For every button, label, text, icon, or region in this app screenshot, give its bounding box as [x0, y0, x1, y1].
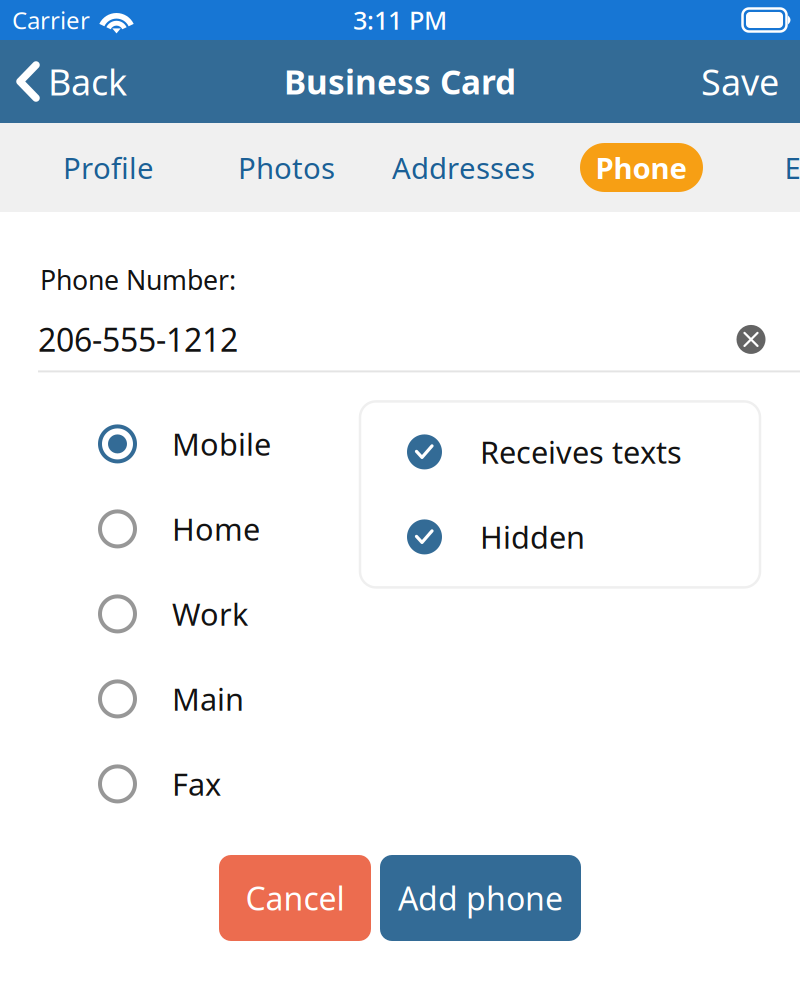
button[interactable]: Clear phone number — [729, 317, 773, 361]
staticText: Hidden — [480, 517, 585, 557]
button[interactable]: Cancel — [219, 855, 371, 941]
staticText: Business Card — [284, 59, 516, 104]
button[interactable]: Phone — [580, 143, 703, 192]
staticText: Fax — [172, 764, 221, 804]
staticText: Save — [701, 58, 779, 105]
staticText: Back — [48, 58, 127, 105]
staticText: Mobile — [172, 424, 271, 464]
button[interactable]: Save — [677, 40, 800, 123]
staticText: Phone Number: — [40, 262, 236, 297]
button[interactable]: Add phone — [380, 855, 581, 941]
staticText: 3:11 PM — [353, 3, 447, 37]
button[interactable]: Mobile — [98, 401, 360, 486]
staticText: 206-555-1212 — [38, 318, 238, 361]
staticText: Add phone — [398, 877, 563, 919]
staticText: Work — [172, 594, 248, 634]
button[interactable]: Addresses — [393, 143, 534, 192]
staticText: Profile — [63, 148, 154, 187]
button[interactable]: Email — [782, 143, 800, 192]
button[interactable]: Hidden — [407, 494, 740, 579]
button[interactable]: Fax — [98, 741, 360, 826]
staticText: Email — [784, 148, 800, 187]
staticText: Cancel — [245, 877, 344, 919]
staticText: Home — [172, 509, 260, 549]
staticText: Photos — [238, 148, 335, 187]
button[interactable]: Home — [98, 486, 360, 571]
staticText: Receives texts — [480, 432, 682, 472]
button[interactable]: Profile — [66, 143, 151, 192]
button[interactable]: Work — [98, 571, 360, 656]
button[interactable]: Receives texts — [407, 409, 740, 494]
staticText: Phone — [595, 148, 687, 187]
staticText: Main — [172, 679, 244, 719]
button[interactable]: Photos — [243, 143, 330, 192]
staticText: Addresses — [392, 148, 535, 187]
button[interactable]: Back — [0, 40, 143, 123]
staticText: Carrier — [12, 4, 90, 36]
button[interactable]: Main — [98, 656, 360, 741]
